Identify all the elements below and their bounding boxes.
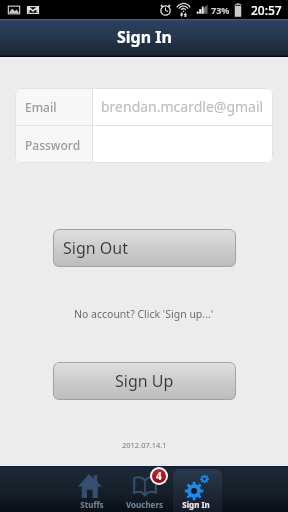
- staticText: Email: [25, 99, 57, 115]
- button[interactable]: brendan.mcardle@gmail: [93, 88, 273, 125]
- staticText: 73%: [211, 4, 230, 16]
- staticText: brendan.mcardle@gmail: [101, 97, 264, 116]
- staticText: 20:57: [251, 2, 282, 18]
- other: Sign In: [184, 474, 208, 498]
- staticText: No account? Click 'Sign up...': [74, 307, 214, 321]
- button[interactable]: [69, 469, 118, 512]
- button[interactable]: [173, 469, 222, 512]
- other: Vouchers: [133, 474, 157, 498]
- staticText: Password: [25, 137, 81, 153]
- staticText: Vouchers: [126, 499, 163, 510]
- staticText: Sign In: [117, 26, 172, 48]
- button[interactable]: [93, 126, 273, 163]
- staticText: Sign In: [182, 499, 210, 510]
- staticText: Stuffs: [80, 499, 104, 510]
- staticText: Sign Out: [63, 237, 128, 259]
- button[interactable]: Sign Out: [53, 229, 236, 267]
- other: Stuffs: [78, 474, 102, 498]
- button[interactable]: [121, 469, 170, 512]
- staticText: 4: [156, 469, 162, 483]
- staticText: Sign Up: [115, 370, 174, 392]
- button[interactable]: Sign Up: [53, 362, 236, 400]
- staticText: 2012.07.14.1: [122, 440, 167, 450]
